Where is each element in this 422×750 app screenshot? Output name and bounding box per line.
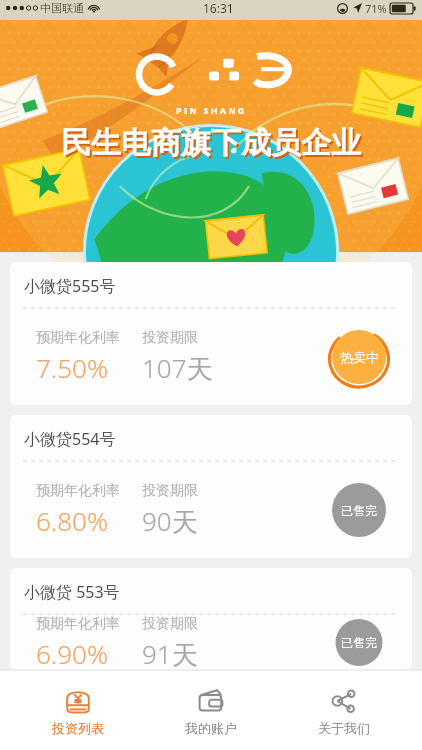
staticText: 预期年化利率	[36, 482, 120, 500]
button[interactable]: 小微贷554号	[10, 415, 412, 558]
staticText: 已售完	[341, 635, 377, 650]
button[interactable]: 关于我们	[289, 682, 399, 740]
staticText: 投资期限	[142, 615, 198, 633]
staticText: 关于我们	[318, 720, 370, 736]
staticText: 6.90%	[36, 636, 108, 670]
staticText: 91天	[142, 636, 198, 670]
button[interactable]: 已售完	[328, 615, 390, 670]
button[interactable]: 小微贷 553号	[10, 568, 412, 670]
staticText: 107天	[142, 350, 213, 386]
staticText: 小微贷555号	[24, 275, 116, 297]
staticText: 投资期限	[142, 329, 198, 347]
staticText: 7.50%	[36, 350, 108, 385]
staticText: 预期年化利率	[36, 329, 120, 347]
staticText: 预期年化利率	[36, 615, 120, 633]
button[interactable]: 投资列表	[23, 682, 133, 740]
staticText: 投资期限	[142, 482, 198, 500]
staticText: PIN SHANG	[176, 104, 247, 116]
staticText: 投资列表	[52, 720, 104, 736]
staticText: 小微贷 553号	[24, 581, 120, 603]
button[interactable]: 我的账户	[156, 682, 266, 740]
staticText: 我的账户	[185, 720, 237, 736]
staticText: 民生电商旗下成员企业	[61, 124, 361, 162]
staticText: 90天	[142, 503, 198, 539]
staticText: 71%	[365, 1, 387, 16]
staticText: 6.80%	[36, 503, 108, 538]
button[interactable]: 热卖中	[328, 326, 390, 388]
staticText: 中国联通	[40, 1, 84, 15]
staticText: 16:31	[203, 0, 234, 16]
staticText: 民生电商旗下成员企业	[63, 126, 363, 164]
button[interactable]: 已售完	[328, 479, 390, 541]
button[interactable]: 小微贷555号	[10, 262, 412, 405]
staticText: 热卖中	[340, 349, 379, 365]
staticText: 已售完	[341, 503, 377, 518]
staticText: 小微贷554号	[24, 428, 116, 450]
